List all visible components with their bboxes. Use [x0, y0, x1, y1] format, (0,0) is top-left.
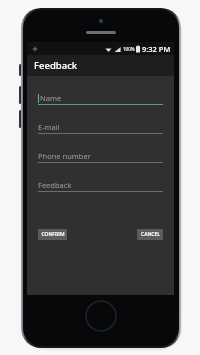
staticText: 9:32 PM — [142, 44, 171, 54]
staticText: Feedback — [38, 180, 72, 190]
button[interactable]: CANCEL — [137, 229, 163, 240]
staticText: E-mail — [38, 122, 60, 132]
button[interactable]: E-mail — [38, 121, 163, 132]
button[interactable]: Feedback — [38, 179, 163, 190]
staticText: Feedback — [34, 59, 78, 72]
button[interactable]: CONFIRM — [38, 229, 67, 240]
staticText: 100% — [123, 46, 135, 52]
staticText: CONFIRM — [41, 231, 65, 238]
staticText: CANCEL — [141, 231, 160, 238]
staticText: Phone number — [38, 151, 91, 161]
staticText: Name — [40, 93, 62, 103]
button[interactable]: Phone number — [38, 150, 163, 161]
button[interactable]: Name — [38, 92, 163, 103]
